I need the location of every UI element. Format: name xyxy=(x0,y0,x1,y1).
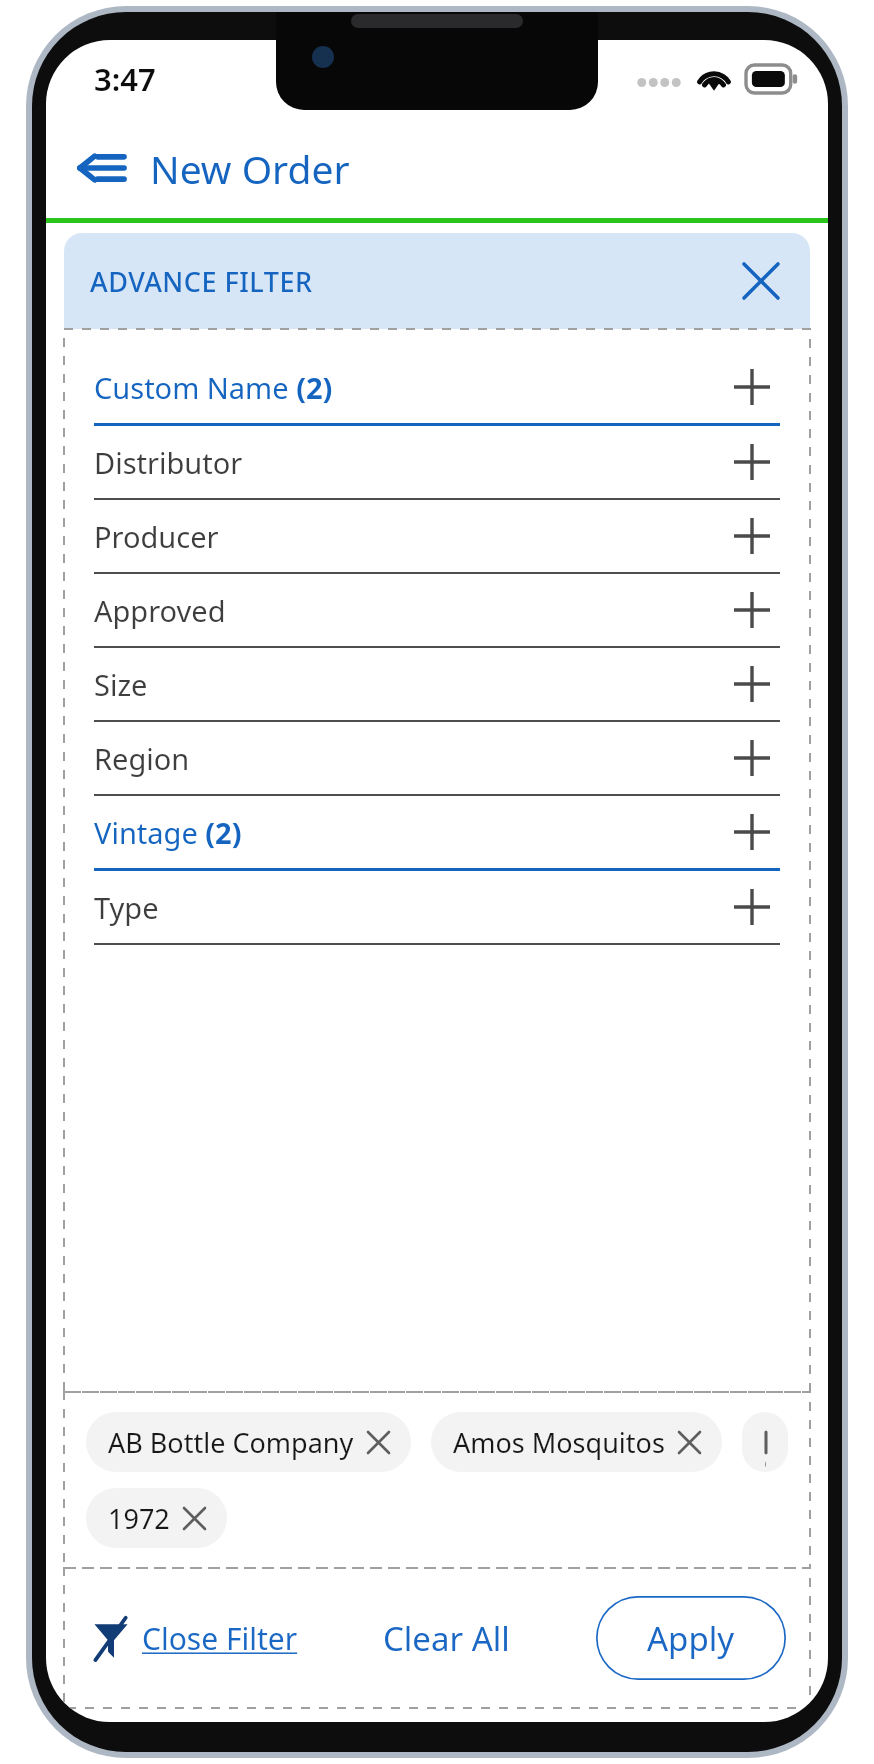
staticText: Amos Mosquitos xyxy=(453,1424,665,1461)
button[interactable]: Region xyxy=(94,722,780,796)
staticText: Size xyxy=(94,665,148,704)
other: Add Approved xyxy=(724,582,780,638)
button[interactable]: Producer xyxy=(94,500,780,574)
button[interactable]: Close Filter xyxy=(88,1609,298,1667)
staticText: Custom Name (2) xyxy=(94,368,333,407)
staticText: ADVANCE FILTER xyxy=(90,263,313,300)
other: Add Region xyxy=(724,730,780,786)
button[interactable]: Clear All xyxy=(375,1606,518,1671)
button[interactable]: Type xyxy=(94,871,780,945)
button[interactable]: Size xyxy=(94,648,780,722)
button[interactable]: Back xyxy=(68,134,136,202)
staticText: 1969 xyxy=(764,1412,766,1472)
staticText: AB Bottle Company xyxy=(108,1424,354,1461)
staticText: Clear All xyxy=(383,1616,510,1661)
button[interactable]: Distributor xyxy=(94,426,780,500)
other: Add Size xyxy=(724,656,780,712)
button[interactable]: AB Bottle Company xyxy=(108,1412,389,1472)
staticText: 1972 xyxy=(108,1500,170,1537)
staticText: Approved xyxy=(94,591,226,630)
staticText: Type xyxy=(94,888,159,927)
other: Add Type xyxy=(724,879,780,935)
button[interactable]: ADVANCE FILTER xyxy=(64,233,810,329)
staticText: Region xyxy=(94,739,190,778)
staticText: Apply xyxy=(647,1616,735,1661)
staticText: 3:47 xyxy=(94,58,156,100)
staticText: Close Filter xyxy=(142,1618,298,1659)
other: Add Custom Name xyxy=(724,359,780,415)
button[interactable]: Vintage (2) xyxy=(94,796,780,871)
other: Add Producer xyxy=(724,508,780,564)
button[interactable]: Close filter xyxy=(730,250,792,312)
staticText: Producer xyxy=(94,517,219,556)
staticText: Distributor xyxy=(94,443,243,482)
button[interactable]: Apply xyxy=(596,1596,786,1680)
staticText: New Order xyxy=(150,142,350,195)
button[interactable]: 1969 xyxy=(764,1412,766,1472)
staticText: Vintage (2) xyxy=(94,813,242,852)
button[interactable]: Amos Mosquitos xyxy=(453,1412,700,1472)
other: Add Vintage xyxy=(724,804,780,860)
other: Add Distributor xyxy=(724,434,780,490)
button[interactable]: 1972 xyxy=(108,1488,205,1548)
button[interactable]: Approved xyxy=(94,574,780,648)
button[interactable]: Custom Name (2) xyxy=(94,351,780,426)
